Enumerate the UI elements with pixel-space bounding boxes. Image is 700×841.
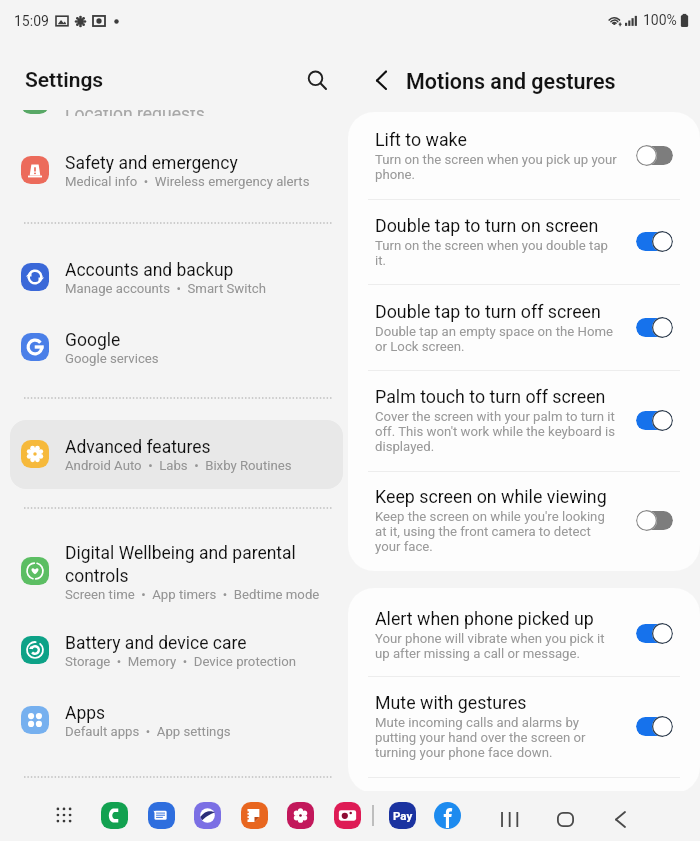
staticText: up after missing a call or message. — [375, 646, 580, 661]
staticText: Digital Wellbeing and parental — [65, 543, 296, 564]
staticText: 100% — [643, 12, 677, 28]
staticText: phone. — [375, 167, 415, 182]
staticText: Apps — [65, 703, 106, 724]
staticText: Storage • Memory • Device protection — [65, 654, 296, 669]
staticText: Lift to wake — [375, 129, 467, 150]
staticText: Keep screen on while viewing — [375, 486, 607, 507]
staticText: your face. — [375, 539, 433, 554]
button[interactable] — [10, 529, 343, 607]
button[interactable]: Camera — [334, 802, 361, 829]
staticText: Cover the screen with your palm to turn … — [375, 409, 615, 424]
button[interactable]: Internet — [194, 802, 221, 829]
staticText: Medical info • Wireless emergency alerts — [65, 174, 310, 189]
button[interactable]: Off — [636, 145, 673, 166]
button[interactable] — [10, 423, 343, 479]
staticText: Settings — [25, 68, 104, 93]
button[interactable] — [348, 369, 700, 471]
button[interactable] — [348, 675, 700, 777]
staticText: putting your hand over the screen or — [375, 730, 586, 745]
staticText: off. This won't work while the keyboard … — [375, 424, 615, 439]
staticText: turning your phone face down. — [375, 745, 553, 760]
button[interactable] — [10, 139, 343, 195]
button[interactable]: Home — [547, 801, 583, 837]
staticText: Turn on the screen when you pick up your — [375, 152, 617, 167]
button[interactable]: Phone — [101, 802, 128, 829]
staticText: Location requests — [65, 110, 205, 116]
button[interactable]: Notes — [241, 802, 268, 829]
button[interactable] — [348, 112, 700, 199]
button[interactable]: On — [636, 623, 673, 644]
staticText: at it, using the front camera to detect — [375, 524, 591, 539]
button[interactable] — [348, 284, 700, 370]
button[interactable]: All apps — [50, 801, 78, 829]
button[interactable]: Back — [602, 801, 638, 837]
staticText: Advanced features — [65, 437, 211, 458]
button[interactable] — [348, 198, 700, 284]
staticText: Android Auto • Labs • Bixby Routines — [65, 458, 292, 473]
button[interactable]: Search — [298, 61, 333, 96]
button[interactable]: On — [636, 716, 673, 737]
staticText: Motions and gestures — [406, 69, 616, 94]
staticText: Double tap to turn on screen — [375, 215, 599, 236]
staticText: 15:09 — [14, 13, 49, 29]
button[interactable]: On — [636, 231, 673, 252]
button[interactable]: Recents — [491, 801, 527, 837]
button[interactable]: Messages — [148, 802, 175, 829]
button[interactable] — [348, 591, 700, 676]
button[interactable] — [10, 316, 343, 372]
staticText: Google — [65, 330, 121, 351]
staticText: Your phone will vibrate when you pick it — [375, 631, 605, 646]
staticText: Palm touch to turn off screen — [375, 386, 606, 407]
staticText: or Lock screen. — [375, 339, 465, 354]
button[interactable] — [10, 619, 343, 675]
button[interactable]: Facebook — [434, 802, 461, 829]
staticText: Default apps • App settings — [65, 724, 231, 739]
button[interactable]: On — [636, 317, 673, 338]
staticText: Double tap an empty space on the Home — [375, 324, 613, 339]
button[interactable] — [10, 420, 343, 489]
staticText: Battery and device care — [65, 633, 247, 654]
staticText: Double tap to turn off screen — [375, 301, 601, 322]
staticText: controls — [65, 566, 129, 587]
button[interactable]: Gallery — [287, 802, 314, 829]
button[interactable] — [10, 689, 343, 745]
button[interactable]: Off — [636, 510, 673, 531]
button[interactable]: Samsung Pay — [389, 802, 416, 829]
staticText: Turn on the screen when you double tap — [375, 238, 608, 253]
staticText: Safety and emergency — [65, 153, 238, 174]
button[interactable]: Back — [367, 62, 403, 98]
button[interactable]: On — [636, 410, 673, 431]
button[interactable] — [10, 246, 343, 302]
staticText: Manage accounts • Smart Switch — [65, 281, 266, 296]
staticText: Screen time • App timers • Bedtime mode — [65, 587, 320, 602]
staticText: Google services — [65, 351, 159, 366]
staticText: Alert when phone picked up — [375, 608, 594, 629]
staticText: Accounts and backup — [65, 260, 234, 281]
staticText: Mute with gestures — [375, 692, 527, 713]
staticText: it. — [375, 253, 386, 268]
staticText: displayed. — [375, 439, 435, 454]
staticText: Mute incoming calls and alarms by — [375, 715, 579, 730]
button[interactable] — [348, 469, 700, 571]
staticText: Pay — [393, 809, 413, 822]
staticText: Keep the screen on while you're looking — [375, 509, 605, 524]
